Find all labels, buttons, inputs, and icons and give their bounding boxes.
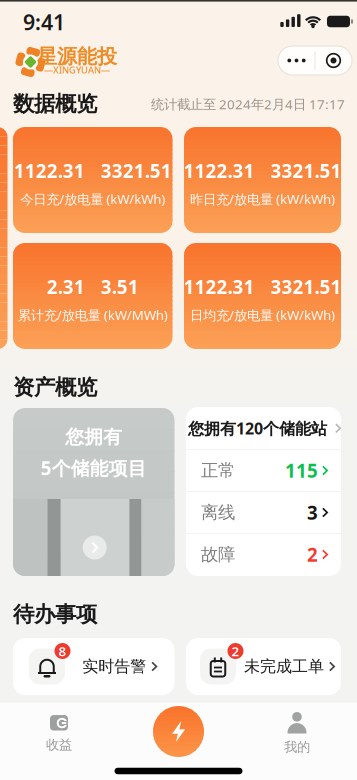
staticText: 9:41 [23,8,65,36]
staticText: 2.31 [47,274,85,299]
staticText: 累计充/放电量 (kW/MWh) [18,306,168,324]
button[interactable]: 实时告警 [13,638,174,695]
staticText: 2 [231,642,239,660]
button[interactable]: 未完成工单 [186,638,341,695]
staticText: 3 [307,500,318,525]
staticText: 3321.51 [101,158,172,183]
staticText: 实时告警 [82,657,146,676]
button[interactable]: 我的 [257,707,337,759]
button[interactable]: 收益 [19,708,99,760]
staticText: 115 [285,458,318,483]
staticText: 未完成工单 [244,657,324,676]
staticText: 3.51 [101,274,139,299]
staticText: 资产概览 [13,374,97,401]
staticText: 昨日充/放电量 (kW/kWh) [190,190,335,208]
staticText: 故障 [201,544,235,565]
staticText: 今日充/放电量 (kW/kWh) [20,190,165,208]
staticText: 您拥有 [65,426,122,448]
button[interactable]: 监控 [153,706,204,757]
staticText: 星源能投 [37,44,117,69]
staticText: 8 [58,642,66,660]
staticText: 收益 [46,737,72,753]
staticText: 统计截止至 2024年2月4日 17:17 [151,95,345,113]
staticText: 1122.31 [14,158,85,183]
staticText: 2 [307,542,318,567]
button[interactable]: 您拥有120个储能站 [186,407,341,449]
staticText: 数据概览 [13,91,97,117]
staticText: 3321.51 [270,274,341,299]
staticText: 1122.31 [183,274,254,299]
staticText: 5个储能项目 [41,456,147,480]
staticText: 正常 [201,460,235,481]
button[interactable]: 正常 [186,449,341,491]
staticText: 3321.51 [270,158,341,183]
button[interactable]: 故障 [186,533,341,575]
button[interactable]: 离线 [186,491,341,533]
staticText: 我的 [284,739,310,755]
staticText: —XINGYUAN— [44,64,110,76]
staticText: 离线 [201,502,235,523]
button[interactable]: 更多 [278,46,314,75]
staticText: 待办事项 [13,601,97,628]
staticText: 1122.31 [183,158,254,183]
button[interactable]: 查看储能项目 [13,408,174,576]
staticText: 您拥有120个储能站 [188,418,327,439]
staticText: 日均充/放电量 (kW/kWh) [190,306,335,324]
button[interactable]: 关闭 [315,46,351,75]
